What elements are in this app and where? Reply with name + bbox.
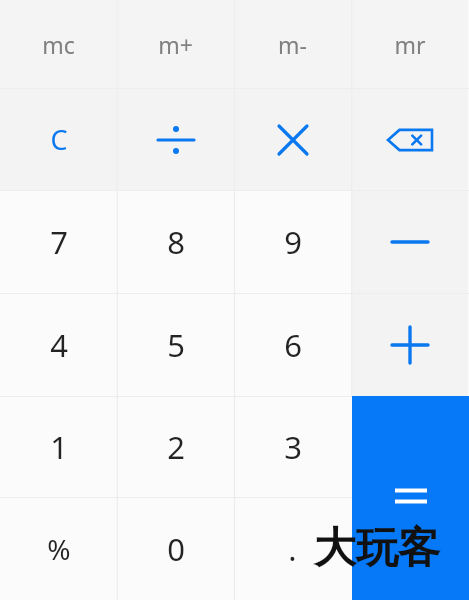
button[interactable]: Plus [351,294,468,396]
button[interactable]: m- [234,0,351,88]
staticText: 0 [167,528,185,570]
button[interactable]: Equals [352,396,469,600]
button[interactable]: 1 [0,397,117,497]
button[interactable]: mr [351,0,468,88]
staticText: % [47,530,71,568]
staticText: 7 [50,221,68,263]
button[interactable]: m+ [117,0,234,88]
staticText: 3 [284,426,302,468]
staticText: 大玩客 [314,522,440,575]
button[interactable]: 0 [117,498,234,600]
staticText: C [50,121,68,158]
button[interactable]: . [234,498,351,600]
staticText: mr [394,29,426,60]
button[interactable]: 5 [117,294,234,396]
button[interactable]: mc [0,0,117,88]
button[interactable]: Multiply [234,89,351,190]
button[interactable]: Divide [117,89,234,190]
button[interactable]: Minus [351,191,468,293]
staticText: . [288,528,297,570]
button[interactable]: 9 [234,191,351,293]
button[interactable]: C [0,89,117,190]
button[interactable]: 8 [117,191,234,293]
staticText: 8 [167,221,185,263]
staticText: m- [278,29,307,60]
button[interactable]: Backspace [351,89,468,190]
button[interactable]: 6 [234,294,351,396]
staticText: 2 [167,426,185,468]
button[interactable]: 4 [0,294,117,396]
button[interactable]: 3 [234,397,351,497]
button[interactable]: % [0,498,117,600]
staticText: mc [42,29,75,60]
staticText: 1 [50,426,68,468]
staticText: 4 [50,324,68,366]
staticText: 6 [284,324,302,366]
staticText: 5 [167,324,185,366]
button[interactable]: 2 [117,397,234,497]
staticText: m+ [158,29,193,60]
staticText: 9 [284,221,302,263]
button[interactable]: 7 [0,191,117,293]
